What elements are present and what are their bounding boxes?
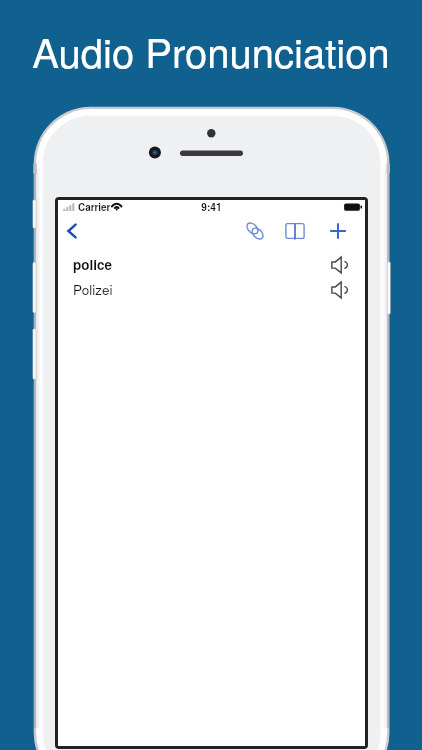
staticText: 9:41 <box>58 200 365 215</box>
button[interactable]: Dictionary <box>279 215 311 247</box>
button[interactable]: Play pronunciation <box>326 253 350 277</box>
button[interactable]: Back <box>56 215 88 247</box>
staticText: Audio Pronunciation <box>32 22 390 79</box>
staticText: Carrier <box>78 200 111 214</box>
button[interactable]: Polizei <box>58 277 365 302</box>
button[interactable]: Play pronunciation <box>326 278 350 302</box>
button[interactable]: Link <box>239 215 271 247</box>
button[interactable]: Add <box>322 215 354 247</box>
staticText: police <box>73 255 113 274</box>
staticText: Polizei <box>73 280 113 299</box>
button[interactable]: police <box>58 252 365 277</box>
